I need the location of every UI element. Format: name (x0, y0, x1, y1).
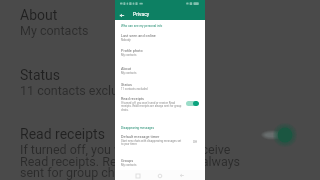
staticText: About (20, 7, 58, 23)
staticText: 11 contacts excluded (121, 87, 148, 90)
button[interactable]: Back (117, 10, 127, 20)
staticText: My contacts (121, 71, 137, 74)
staticText: Status (20, 67, 61, 83)
button[interactable]: Read receipts (115, 96, 205, 114)
staticText: My contacts (121, 163, 137, 166)
staticText: Read receipts. Read receipts are always (20, 154, 241, 169)
staticText: Status (121, 82, 132, 86)
staticText: sent for group chats. (20, 165, 136, 180)
button[interactable]: Back (178, 172, 185, 179)
button[interactable]: Recents (134, 172, 141, 179)
staticText: 11 contacts excluded (20, 83, 139, 98)
staticText: Last seen and online (121, 33, 156, 37)
staticText: Profile photo (121, 48, 143, 52)
staticText: Nobody (121, 38, 131, 41)
staticText: Privacy (133, 11, 150, 17)
button[interactable]: Status (115, 82, 205, 96)
button[interactable]: Last seen and online (115, 33, 205, 47)
staticText: Start new chats with disappearing messag… (121, 139, 183, 146)
staticText: Default message timer (121, 134, 160, 138)
staticText: Groups (121, 158, 134, 162)
button[interactable]: Profile photo (115, 48, 205, 62)
staticText: My contacts (121, 53, 137, 56)
staticText: My contacts (20, 23, 89, 38)
staticText: Read receipts (121, 96, 145, 100)
staticText: About (121, 66, 132, 70)
button[interactable]: Groups (115, 158, 205, 170)
staticText: Who can see my personal info (121, 24, 163, 28)
staticText: If turned off, you won't send or receive… (121, 101, 183, 112)
button[interactable]: About (115, 66, 205, 80)
button[interactable]: Home (156, 172, 163, 179)
button[interactable]: Default message timer (115, 134, 205, 148)
staticText: If turned off, you won't send or receive (20, 142, 231, 157)
staticText: Disappearing messages (121, 126, 155, 130)
staticText: Read receipts (20, 126, 105, 142)
staticText: Off (193, 140, 197, 143)
